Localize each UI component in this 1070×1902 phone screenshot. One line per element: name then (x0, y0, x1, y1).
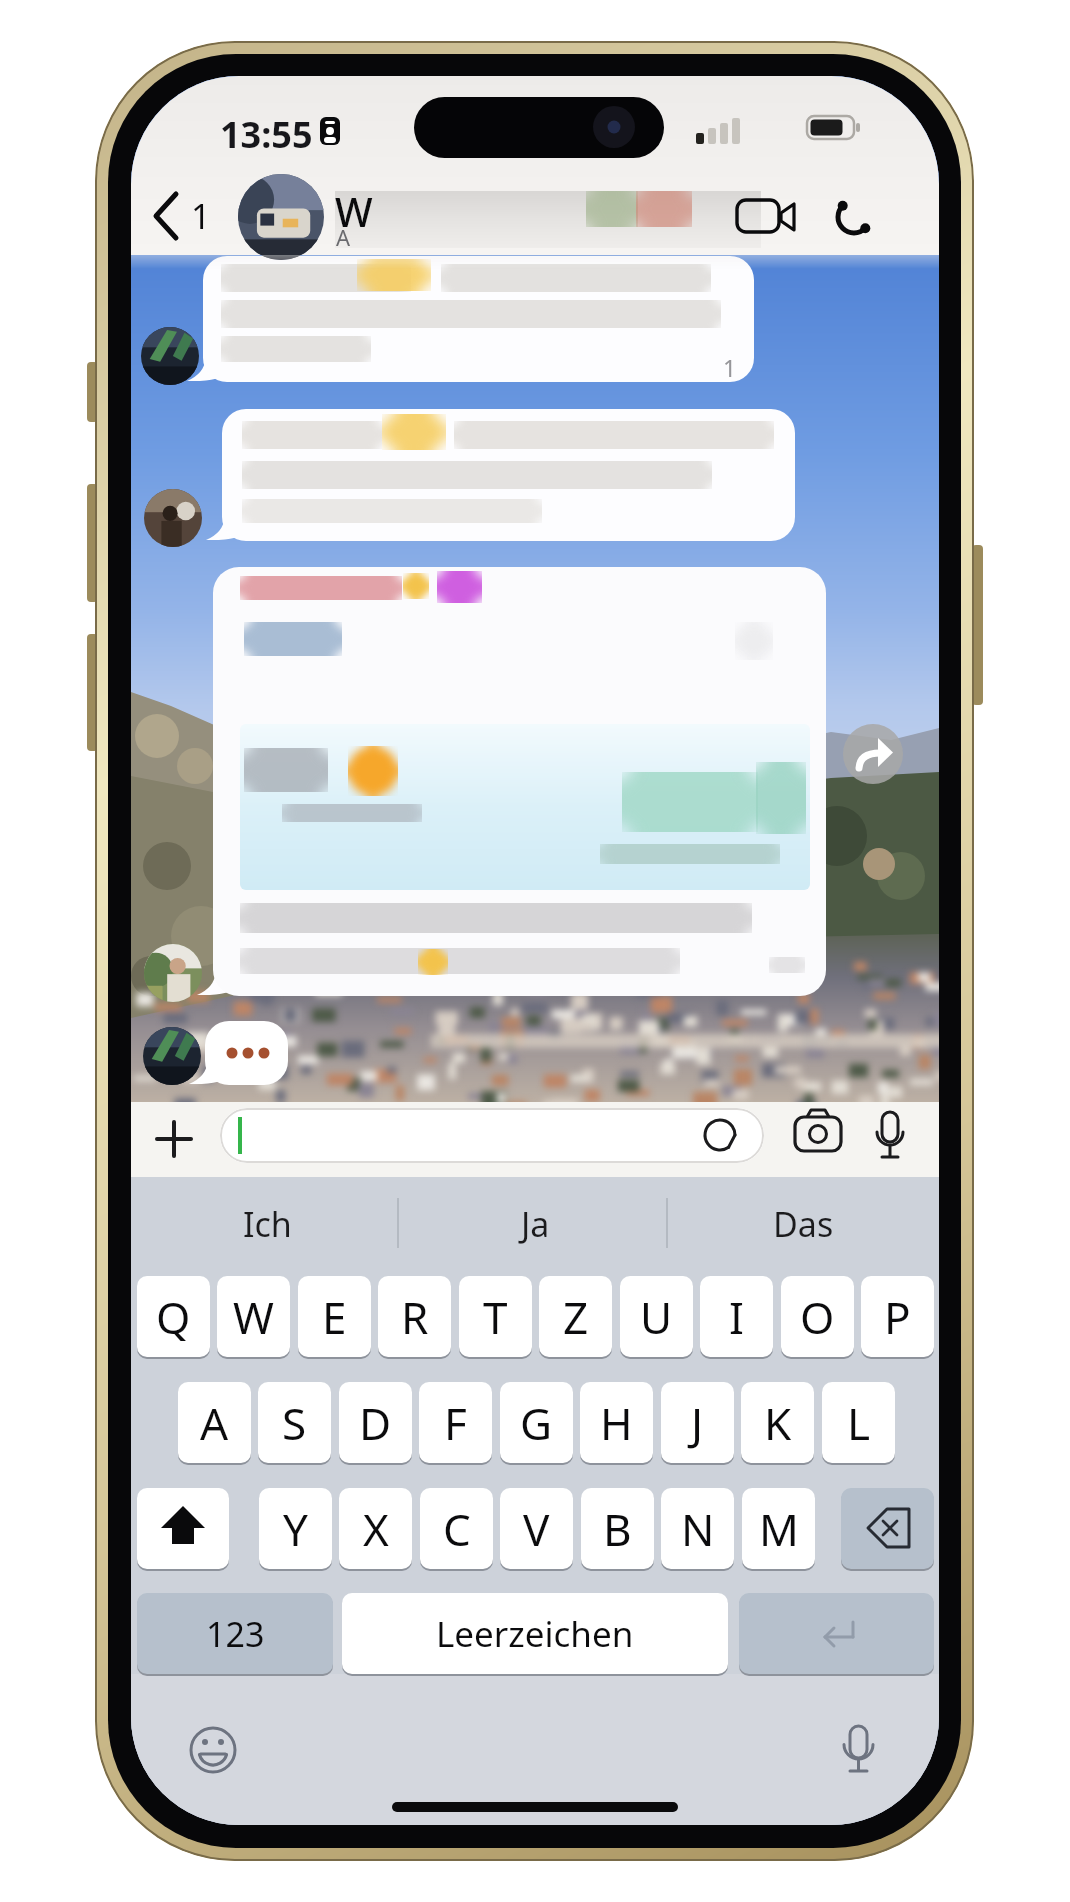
button[interactable]: L (822, 1382, 895, 1463)
button[interactable] (719, 181, 805, 251)
button[interactable]: Y (259, 1488, 332, 1569)
staticText: 123 (206, 1611, 265, 1657)
button[interactable]: Leerzeichen (342, 1593, 728, 1674)
button[interactable]: Q (137, 1276, 210, 1357)
button[interactable]: 1 (203, 256, 754, 382)
button[interactable]: T (459, 1276, 532, 1357)
button[interactable] (843, 724, 903, 784)
staticText: X (363, 1499, 389, 1559)
staticText: N (681, 1499, 715, 1559)
button[interactable]: M (742, 1488, 815, 1569)
button[interactable]: F (419, 1382, 492, 1463)
staticText: T (483, 1287, 508, 1347)
button[interactable]: 1 (181, 192, 221, 240)
button[interactable] (779, 1102, 851, 1172)
button[interactable]: P (861, 1276, 934, 1357)
staticText: Ich (243, 1201, 292, 1247)
button[interactable] (144, 944, 202, 1002)
staticText: 13:55 (220, 110, 313, 152)
button[interactable]: J (661, 1382, 734, 1463)
button[interactable]: K (741, 1382, 814, 1463)
staticText: L (847, 1393, 871, 1453)
button[interactable] (841, 1488, 934, 1569)
button[interactable] (213, 567, 826, 996)
staticText: O (800, 1287, 835, 1347)
staticText: V (523, 1499, 550, 1559)
button[interactable]: G (500, 1382, 573, 1463)
staticText: U (640, 1287, 673, 1347)
button[interactable]: Ich (171, 1198, 363, 1250)
button[interactable]: I (700, 1276, 773, 1357)
staticText: Leerzeichen (436, 1610, 634, 1658)
button[interactable] (220, 1108, 764, 1163)
staticText: F (444, 1393, 467, 1453)
button[interactable] (137, 1488, 229, 1569)
button[interactable]: Z (539, 1276, 612, 1357)
button[interactable] (819, 181, 893, 251)
button[interactable] (144, 489, 202, 547)
staticText: Das (773, 1201, 834, 1247)
button[interactable]: W (217, 1276, 290, 1357)
staticText: C (443, 1499, 471, 1559)
staticText: 1 (723, 352, 737, 382)
staticText: 1 (191, 193, 211, 239)
button[interactable] (141, 327, 199, 385)
staticText: E (322, 1287, 347, 1347)
button[interactable] (739, 1593, 934, 1674)
staticText: G (520, 1393, 553, 1453)
button[interactable]: R (378, 1276, 451, 1357)
staticText: Y (283, 1499, 308, 1559)
button[interactable]: V (500, 1488, 573, 1569)
button[interactable]: X (339, 1488, 412, 1569)
button[interactable]: S (258, 1382, 331, 1463)
button[interactable] (238, 174, 324, 260)
button[interactable] (222, 409, 795, 541)
button[interactable]: H (580, 1382, 653, 1463)
button[interactable]: Das (707, 1198, 899, 1250)
button[interactable]: Ja (439, 1198, 631, 1250)
button[interactable] (823, 1716, 895, 1786)
staticText: M (759, 1499, 799, 1559)
staticText: Z (563, 1287, 589, 1347)
button[interactable] (144, 1107, 206, 1171)
staticText: B (603, 1499, 632, 1559)
button[interactable]: D (339, 1382, 412, 1463)
staticText: H (600, 1393, 633, 1453)
staticText: S (282, 1393, 307, 1453)
button[interactable] (141, 176, 221, 256)
staticText: P (884, 1287, 911, 1347)
staticText: D (359, 1393, 392, 1453)
button[interactable]: C (420, 1488, 493, 1569)
button[interactable]: U (620, 1276, 693, 1357)
staticText: Ja (521, 1201, 550, 1247)
button[interactable]: A (178, 1382, 251, 1463)
staticText: W (335, 184, 373, 238)
staticText: K (764, 1393, 792, 1453)
staticText: A (200, 1393, 229, 1453)
staticText: I (729, 1287, 744, 1347)
button[interactable] (177, 1716, 249, 1786)
staticText: A (336, 222, 351, 252)
button[interactable]: O (781, 1276, 854, 1357)
button[interactable]: N (661, 1488, 734, 1569)
button[interactable] (855, 1102, 925, 1172)
staticText: R (401, 1287, 429, 1347)
button[interactable]: 123 (137, 1593, 333, 1674)
staticText: Q (156, 1287, 191, 1347)
button[interactable]: E (298, 1276, 371, 1357)
staticText: J (691, 1393, 704, 1453)
staticText: W (233, 1287, 274, 1347)
button[interactable]: B (581, 1488, 654, 1569)
button[interactable] (143, 1027, 201, 1085)
